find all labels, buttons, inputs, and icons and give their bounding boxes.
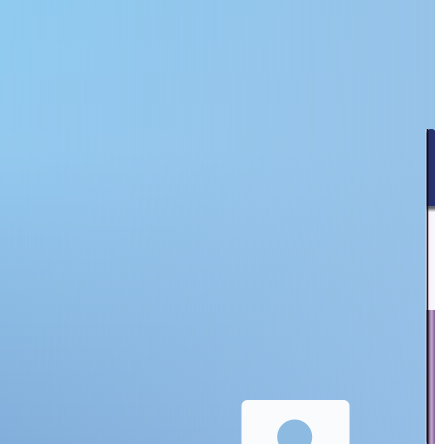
- button[interactable]: Media card: [425, 129, 435, 444]
- button[interactable]: Contact: [241, 400, 349, 444]
